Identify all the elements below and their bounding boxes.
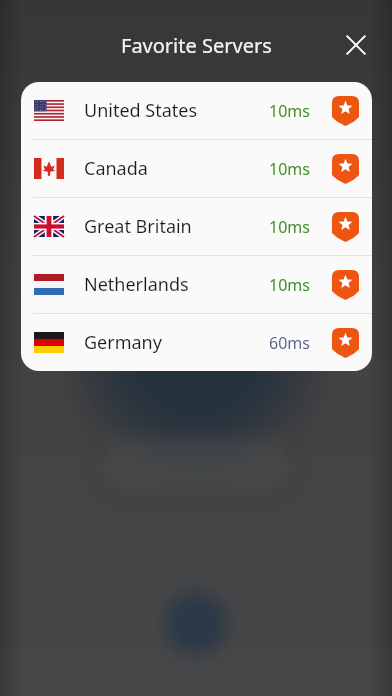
staticText: 60ms xyxy=(269,332,310,354)
staticText: Netherlands xyxy=(84,272,269,297)
staticText: 10ms xyxy=(269,274,310,296)
staticText: Canada xyxy=(84,156,269,181)
button[interactable]: United States xyxy=(21,82,372,139)
button[interactable]: Favorite Great Britain xyxy=(330,212,360,242)
button[interactable]: Germany xyxy=(21,314,372,371)
button[interactable]: Favorite United States xyxy=(330,96,360,126)
staticText: 10ms xyxy=(269,216,310,238)
staticText: 10ms xyxy=(269,100,310,122)
button[interactable]: Favorite Netherlands xyxy=(330,270,360,300)
button[interactable]: Close xyxy=(334,23,378,67)
staticText: Favorite Servers xyxy=(121,32,272,59)
button[interactable]: Great Britain xyxy=(21,198,372,255)
button[interactable]: Netherlands xyxy=(21,256,372,313)
staticText: Germany xyxy=(84,330,269,355)
button[interactable]: Favorite Canada xyxy=(330,154,360,184)
button[interactable]: Canada xyxy=(21,140,372,197)
staticText: United States xyxy=(84,98,269,123)
staticText: Great Britain xyxy=(84,214,269,239)
button[interactable]: Favorite Germany xyxy=(330,328,360,358)
staticText: 10ms xyxy=(269,158,310,180)
